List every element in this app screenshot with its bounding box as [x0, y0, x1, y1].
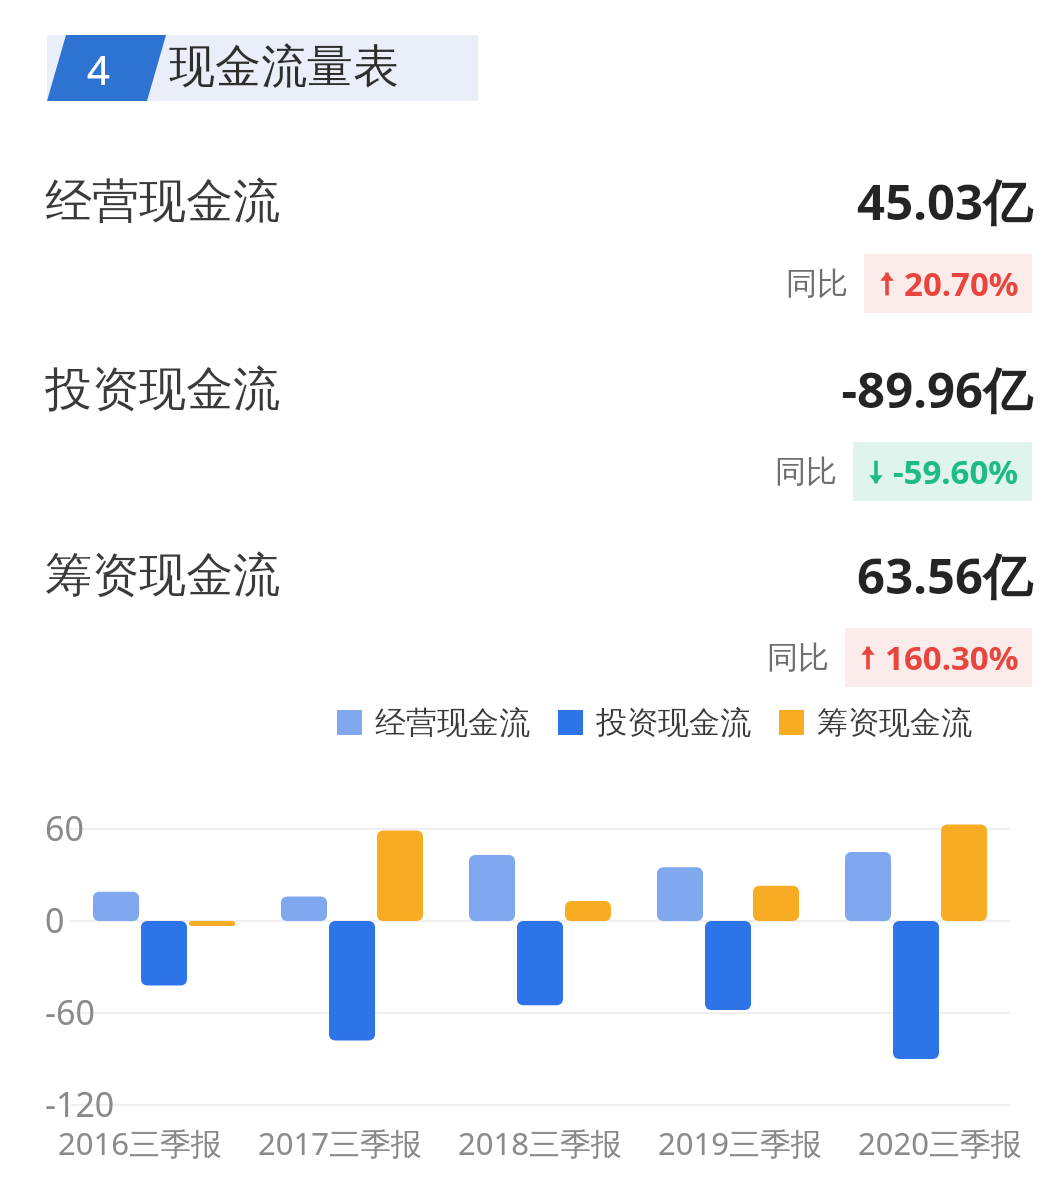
staticText: -59.60%	[893, 449, 1019, 494]
staticText: 4	[87, 42, 110, 96]
staticText: 筹资现金流	[817, 703, 972, 742]
button[interactable]: Increase	[877, 261, 1019, 306]
staticText: 2017三季报	[258, 1122, 422, 1164]
staticText: 2019三季报	[658, 1122, 822, 1164]
staticText: 同比	[786, 264, 848, 303]
staticText: 现金流量表	[169, 38, 399, 96]
other: Increase	[858, 643, 878, 673]
button[interactable]: 投资现金流	[558, 703, 751, 742]
staticText: 20.70%	[904, 261, 1019, 306]
staticText: 同比	[775, 452, 837, 491]
staticText: 160.30%	[885, 635, 1019, 680]
other: Decrease	[866, 457, 886, 487]
staticText: 2018三季报	[458, 1122, 622, 1164]
staticText: 经营现金流	[45, 172, 280, 231]
staticText: 投资现金流	[45, 360, 280, 419]
staticText: 投资现金流	[596, 703, 751, 742]
staticText: 0	[45, 897, 65, 943]
button[interactable]: 经营现金流	[0, 168, 1052, 344]
button[interactable]: 4	[47, 35, 478, 101]
staticText: 2020三季报	[858, 1122, 1022, 1164]
button[interactable]: Decrease	[866, 449, 1019, 494]
button[interactable]: Increase	[858, 635, 1019, 680]
button[interactable]: 经营现金流	[337, 703, 530, 742]
staticText: 60	[45, 805, 84, 851]
staticText: -89.96亿	[532, 356, 1032, 423]
button[interactable]: 筹资现金流	[779, 703, 972, 742]
staticText: 2016三季报	[58, 1122, 222, 1164]
staticText: 筹资现金流	[45, 546, 280, 605]
staticText: 45.03亿	[532, 168, 1032, 235]
button[interactable]: 筹资现金流	[0, 542, 1052, 718]
staticText: -120	[45, 1081, 115, 1127]
other: Increase	[877, 269, 897, 299]
button[interactable]: 投资现金流	[0, 356, 1052, 532]
staticText: 经营现金流	[375, 703, 530, 742]
staticText: -60	[45, 989, 95, 1035]
staticText: 63.56亿	[532, 542, 1032, 609]
staticText: 同比	[767, 638, 829, 677]
